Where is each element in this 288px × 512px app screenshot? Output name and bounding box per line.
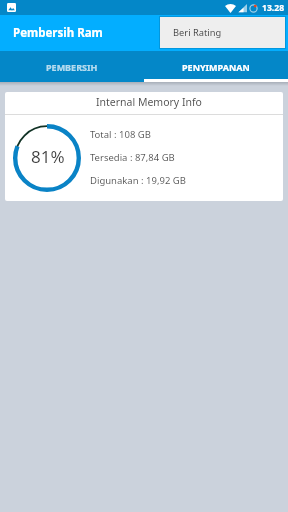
staticText: Total : 108 GB [90, 128, 151, 141]
staticText: Pembersih Ram [13, 25, 103, 41]
staticText: Digunakan : 19,92 GB [90, 174, 186, 187]
button[interactable]: Beri Rating [160, 17, 285, 48]
other: Alarm [249, 4, 258, 13]
staticText: Internal Memory Info [96, 95, 202, 109]
staticText: Beri Rating [173, 26, 222, 39]
staticText: PENYIMPANAN [182, 61, 250, 73]
staticText: 81% [31, 145, 65, 168]
button[interactable]: PEMBERSIH [0, 51, 144, 82]
staticText: 13.28 [262, 2, 285, 14]
other: Gallery notification [7, 3, 16, 12]
button[interactable]: PENYIMPANAN [144, 51, 288, 82]
staticText: PEMBERSIH [46, 61, 98, 73]
staticText: Tersedia : 87,84 GB [90, 151, 175, 164]
